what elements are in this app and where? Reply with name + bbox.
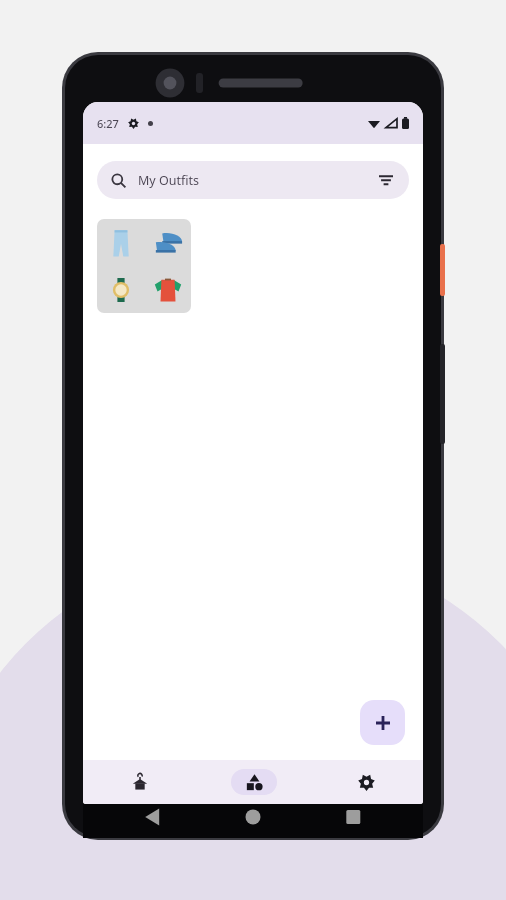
button[interactable]: My Outfits bbox=[97, 161, 409, 199]
staticText: 6:27 bbox=[97, 116, 119, 131]
button[interactable]: Wardrobe bbox=[83, 760, 197, 804]
button[interactable]: Outfits bbox=[197, 760, 310, 804]
staticText: My Outfits bbox=[138, 172, 199, 189]
button[interactable]: Outfit bbox=[97, 219, 191, 313]
button[interactable]: Settings bbox=[310, 760, 423, 804]
button[interactable]: Filter bbox=[377, 171, 395, 189]
button[interactable]: Add outfit bbox=[360, 700, 405, 745]
